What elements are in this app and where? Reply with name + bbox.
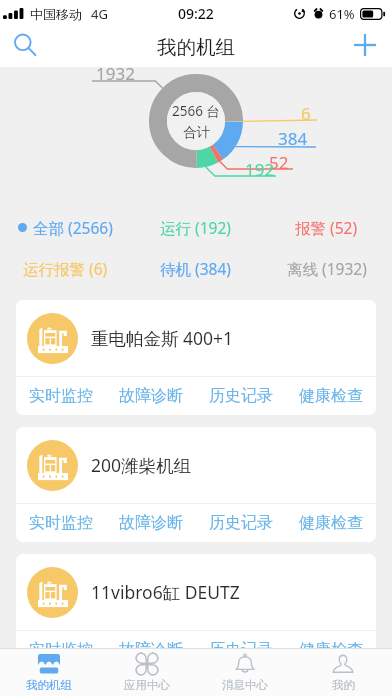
button[interactable]: 报警 (52)	[261, 214, 392, 240]
button[interactable]: 实时监控	[16, 504, 106, 542]
staticText: 实时监控	[29, 386, 93, 406]
staticText: 历史记录	[209, 513, 273, 533]
button[interactable]: 我的	[294, 649, 392, 696]
staticText: 192	[245, 158, 275, 181]
staticText: 09:22	[178, 4, 214, 23]
staticText: 实时监控	[29, 513, 93, 533]
staticText: 52	[269, 151, 289, 174]
button[interactable]: 11vibro6缸 DEUTZ	[16, 554, 376, 630]
button[interactable]: 重电帕金斯 400+1	[16, 300, 376, 376]
button[interactable]: 健康检查	[286, 631, 376, 669]
button[interactable]: 历史记录	[196, 631, 286, 669]
staticText: 故障诊断	[119, 513, 183, 533]
staticText: 健康检查	[299, 386, 363, 406]
staticText: 6	[301, 102, 311, 125]
staticText: 中国移动	[30, 6, 82, 22]
button[interactable]: Add	[343, 27, 387, 67]
staticText: 应用中心	[124, 678, 170, 692]
staticText: 200潍柴机组	[91, 453, 192, 477]
staticText: 合计	[183, 124, 210, 141]
button[interactable]: 实时监控	[16, 631, 106, 669]
staticText: 384	[278, 127, 308, 150]
staticText: 报警 (52)	[295, 217, 358, 238]
staticText: 61%	[329, 5, 355, 23]
button[interactable]: 运行报警 (6)	[0, 255, 130, 281]
staticText: 重电帕金斯 400+1	[91, 326, 234, 350]
staticText: 实时监控	[29, 640, 93, 660]
staticText: 运行 (192)	[160, 217, 231, 238]
button[interactable]: 离线 (1932)	[261, 255, 392, 281]
button[interactable]: 消息中心	[196, 649, 294, 696]
button[interactable]: 运行 (192)	[130, 214, 261, 240]
staticText: 2566 台	[172, 102, 220, 120]
button[interactable]: 故障诊断	[106, 631, 196, 669]
button[interactable]: 故障诊断	[106, 504, 196, 542]
staticText: 故障诊断	[119, 640, 183, 660]
staticText: 我的机组	[157, 35, 235, 60]
staticText: 待机 (384)	[160, 258, 231, 279]
staticText: 历史记录	[209, 640, 273, 660]
staticText: 离线 (1932)	[287, 258, 367, 279]
button[interactable]: 历史记录	[196, 377, 286, 415]
staticText: 1932	[96, 62, 135, 85]
staticText: 运行报警 (6)	[23, 258, 108, 279]
staticText: 健康检查	[299, 640, 363, 660]
button[interactable]: 我的机组	[0, 649, 98, 696]
staticText: 健康检查	[299, 513, 363, 533]
staticText: 历史记录	[209, 386, 273, 406]
button[interactable]: 实时监控	[16, 377, 106, 415]
button[interactable]: 历史记录	[196, 504, 286, 542]
button[interactable]: 全部 (2566)	[0, 214, 130, 240]
button[interactable]: 健康检查	[286, 377, 376, 415]
staticText: 我的	[332, 678, 355, 692]
button[interactable]: Search	[3, 27, 47, 67]
button[interactable]: 健康检查	[286, 504, 376, 542]
staticText: 4G	[91, 5, 108, 23]
staticText: 11vibro6缸 DEUTZ	[91, 580, 240, 604]
staticText: 故障诊断	[119, 386, 183, 406]
button[interactable]: 应用中心	[98, 649, 196, 696]
staticText: 全部 (2566)	[33, 217, 113, 238]
button[interactable]: 故障诊断	[106, 377, 196, 415]
button[interactable]: 200潍柴机组	[16, 427, 376, 503]
button[interactable]: 待机 (384)	[130, 255, 261, 281]
staticText: 消息中心	[222, 678, 268, 692]
staticText: 我的机组	[26, 678, 72, 692]
